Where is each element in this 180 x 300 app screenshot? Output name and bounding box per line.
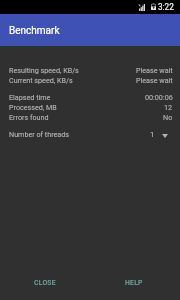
staticText: Errors found [9, 113, 49, 121]
staticText: CLOSE [34, 279, 56, 287]
staticText: 3:22 [158, 2, 174, 12]
staticText: 1 [150, 130, 155, 139]
staticText: 00:00:06 [145, 93, 173, 101]
staticText: No [163, 113, 173, 121]
staticText: Current speed, KB/s [9, 76, 73, 84]
staticText: Benchmark [9, 25, 60, 37]
staticText: Number of threads [9, 130, 70, 138]
staticText: HELP [125, 279, 143, 287]
staticText: Elapsed time [9, 93, 51, 101]
staticText: Processed, MB [9, 103, 57, 111]
staticText: 12 [164, 103, 173, 111]
button[interactable]: Number of threads: 1 [150, 130, 180, 139]
staticText: Resulting speed, KB/s [9, 66, 79, 74]
button[interactable]: CLOSE [28, 274, 62, 292]
staticText: Please wait [136, 76, 173, 84]
button[interactable]: HELP [119, 274, 149, 292]
staticText: Please wait [136, 66, 173, 74]
